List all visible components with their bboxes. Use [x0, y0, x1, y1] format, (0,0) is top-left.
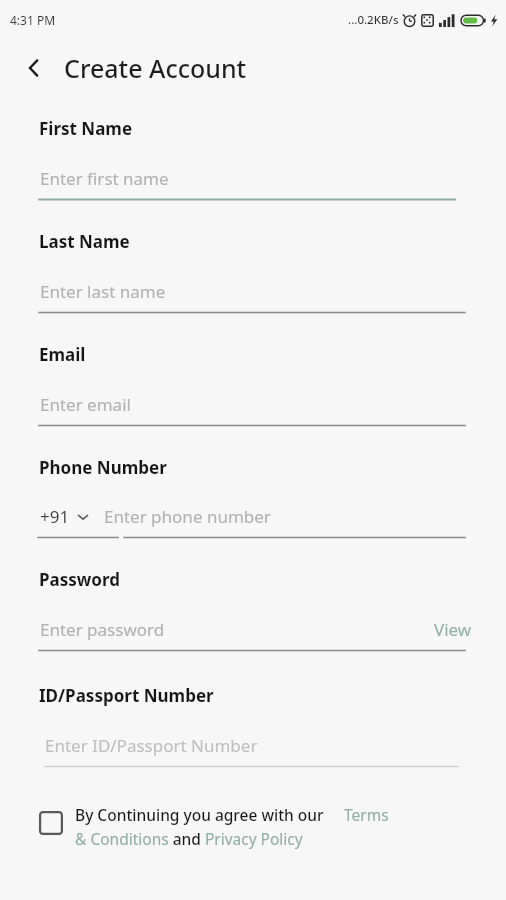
staticText: +91 — [40, 505, 70, 528]
button[interactable]: Enter phone number — [104, 505, 271, 528]
staticText: Enter email — [40, 393, 131, 416]
button[interactable]: +91 — [40, 505, 89, 528]
button[interactable]: & Conditions and Privacy Policy — [75, 828, 303, 849]
button[interactable]: Terms — [344, 804, 389, 825]
staticText: Enter first name — [40, 167, 169, 190]
staticText: By Continuing you agree with our — [75, 804, 324, 825]
button[interactable]: First Name — [0, 117, 506, 201]
staticText: First Name — [39, 117, 133, 140]
staticText: View — [434, 618, 472, 641]
button[interactable]: Email — [0, 343, 506, 427]
button[interactable]: View — [434, 618, 506, 641]
staticText: Phone Number — [39, 456, 167, 479]
staticText: 4:31 PM — [10, 12, 56, 28]
staticText: Password — [39, 568, 120, 591]
staticText: Email — [39, 343, 86, 366]
button[interactable]: ID/Passport Number — [0, 684, 506, 768]
staticText: ...0.2KB/s — [348, 12, 399, 28]
staticText: Enter last name — [40, 280, 166, 303]
staticText: ID/Passport Number — [39, 684, 214, 707]
other: Agree to terms checkbox — [39, 811, 63, 835]
staticText: Enter ID/Passport Number — [45, 734, 258, 757]
button[interactable]: Enter password — [40, 618, 434, 641]
staticText: Last Name — [39, 230, 130, 253]
button[interactable]: Back — [16, 50, 52, 86]
button[interactable]: Last Name — [0, 230, 506, 314]
staticText: Create Account — [64, 51, 247, 85]
button[interactable]: Agree to terms checkbox — [0, 804, 506, 849]
